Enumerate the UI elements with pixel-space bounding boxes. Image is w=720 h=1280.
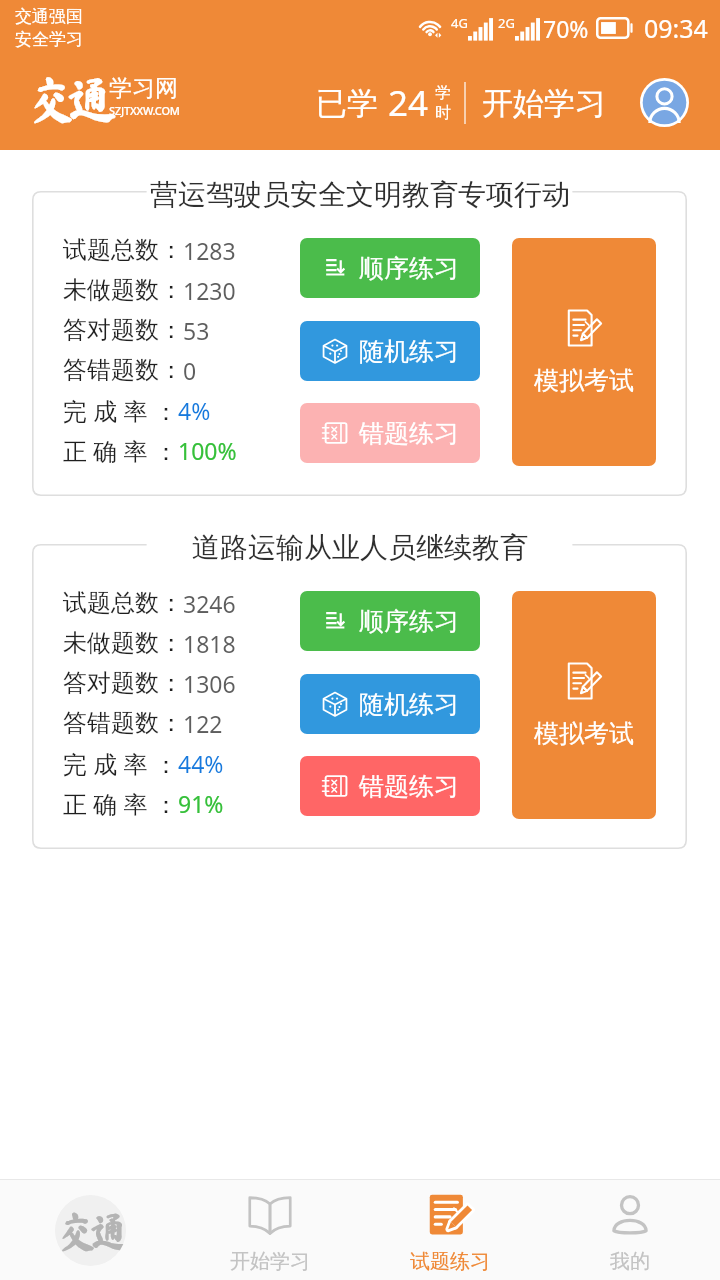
staticText: 学习网 <box>109 74 178 103</box>
staticText: 4% <box>178 395 211 426</box>
staticText: 时 <box>435 103 451 123</box>
button[interactable]: Profile <box>640 78 689 127</box>
staticText: 随机练习 <box>359 336 459 367</box>
staticText: 安全学习 <box>15 29 83 50</box>
staticText: 模拟考试 <box>534 718 634 749</box>
staticText: 学 <box>435 83 451 103</box>
button[interactable]: 随机练习 <box>300 674 480 734</box>
staticText: 错题练习 <box>359 771 459 802</box>
staticText: 顺序练习 <box>359 253 459 284</box>
staticText: 1283 <box>183 235 236 266</box>
button[interactable]: 我的 <box>540 1180 720 1280</box>
staticText: 道路运输从业人员继续教育 <box>192 530 528 565</box>
staticText: 0 <box>183 355 197 386</box>
staticText: SZJTXXW.COM <box>109 103 180 118</box>
staticText: 我的 <box>610 1249 650 1274</box>
button[interactable]: 开始学习 <box>482 84 606 123</box>
staticText: 模拟考试 <box>534 365 634 396</box>
staticText: 3246 <box>183 588 236 619</box>
staticText: 44% <box>178 748 224 779</box>
button[interactable]: 顺序练习 <box>300 238 480 298</box>
staticText: 122 <box>183 708 223 739</box>
button[interactable]: 试题练习 <box>360 1180 540 1280</box>
staticText: 交通 <box>57 1210 124 1252</box>
staticText: 试题总数： <box>63 235 183 265</box>
button[interactable]: 错题练习 <box>300 403 480 463</box>
staticText: 100% <box>178 435 237 466</box>
staticText: 2G <box>498 14 515 32</box>
staticText: 70% <box>543 13 589 44</box>
staticText: 未做题数： <box>63 275 183 305</box>
staticText: 53 <box>183 315 210 346</box>
button[interactable]: 模拟考试 <box>512 591 656 819</box>
staticText: 随机练习 <box>359 689 459 720</box>
staticText: 错题练习 <box>359 418 459 449</box>
staticText: 1818 <box>183 628 236 659</box>
staticText: 完 成 率 ： <box>63 394 178 427</box>
staticText: 1306 <box>183 668 236 699</box>
staticText: 已学 <box>316 84 378 123</box>
staticText: 正 确 率 ： <box>63 787 178 820</box>
staticText: 顺序练习 <box>359 606 459 637</box>
staticText: 答对题数： <box>63 668 183 698</box>
staticText: 24 <box>388 79 429 127</box>
staticText: 开始学习 <box>482 84 606 123</box>
button[interactable]: 随机练习 <box>300 321 480 381</box>
staticText: 正 确 率 ： <box>63 434 178 467</box>
staticText: 4G <box>451 14 468 32</box>
button[interactable]: 交通 Home <box>0 1180 180 1280</box>
staticText: 试题总数： <box>63 588 183 618</box>
staticText: 09:34 <box>644 11 708 45</box>
button[interactable]: 开始学习 <box>180 1180 360 1280</box>
button[interactable]: 模拟考试 <box>512 238 656 466</box>
staticText: 交通 <box>28 74 106 124</box>
button[interactable]: 顺序练习 <box>300 591 480 651</box>
staticText: 营运驾驶员安全文明教育专项行动 <box>150 177 570 212</box>
staticText: 未做题数： <box>63 628 183 658</box>
staticText: 答对题数： <box>63 315 183 345</box>
staticText: 完 成 率 ： <box>63 747 178 780</box>
staticText: 交通强国 <box>15 6 83 27</box>
staticText: 试题练习 <box>410 1249 490 1274</box>
staticText: 答错题数： <box>63 355 183 385</box>
staticText: 答错题数： <box>63 708 183 738</box>
button[interactable]: 错题练习 <box>300 756 480 816</box>
staticText: 1230 <box>183 275 236 306</box>
staticText: 开始学习 <box>230 1249 310 1274</box>
staticText: 91% <box>178 788 224 819</box>
